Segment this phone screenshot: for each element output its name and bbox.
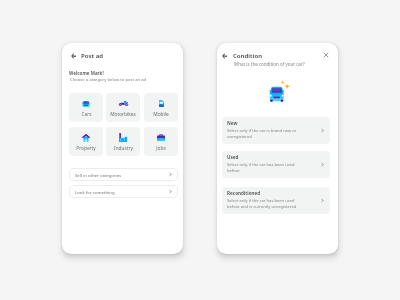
button[interactable]: Motorbikes xyxy=(106,93,140,122)
staticText: Select only if the car has been used xyxy=(227,198,295,204)
staticText: Cars xyxy=(81,111,92,118)
staticText: Motorbikes xyxy=(110,111,136,118)
staticText: Reconditioned xyxy=(227,190,261,196)
staticText: before and is currently unregistered xyxy=(227,204,297,210)
staticText: Look for something xyxy=(75,189,115,195)
staticText: Property xyxy=(76,145,96,152)
button[interactable]: Close xyxy=(320,49,331,60)
button[interactable]: Look for something xyxy=(69,185,178,198)
button[interactable]: Used xyxy=(222,151,330,178)
staticText: Mobile xyxy=(153,111,169,118)
staticText: Condition xyxy=(233,52,263,60)
staticText: Select only if the car has been used xyxy=(227,162,295,168)
button[interactable]: Sell in other categories xyxy=(69,168,178,181)
staticText: Industry xyxy=(114,145,133,152)
staticText: Jobs xyxy=(156,145,166,152)
staticText: Welcome Mark! xyxy=(69,70,104,76)
staticText: Select only if the car is brand new or xyxy=(227,128,297,134)
button[interactable]: Property xyxy=(69,127,103,156)
staticText: New xyxy=(227,120,238,126)
button[interactable]: Back xyxy=(67,50,79,62)
button[interactable]: Industry xyxy=(106,127,140,156)
staticText: Post ad xyxy=(81,52,104,60)
button[interactable]: Cars xyxy=(69,93,103,122)
button[interactable]: Back xyxy=(218,50,230,62)
staticText: Choose a category below to post an ad xyxy=(70,77,147,83)
staticText: What is the condition of your car? xyxy=(234,61,305,67)
button[interactable]: Reconditioned xyxy=(222,187,330,214)
staticText: Sell in other categories xyxy=(75,172,122,178)
staticText: before xyxy=(227,168,240,174)
staticText: unregistered xyxy=(227,134,252,140)
staticText: Used xyxy=(227,154,239,160)
button[interactable]: Mobile xyxy=(144,93,178,122)
button[interactable]: Jobs xyxy=(144,127,178,156)
button[interactable]: New xyxy=(222,117,330,144)
